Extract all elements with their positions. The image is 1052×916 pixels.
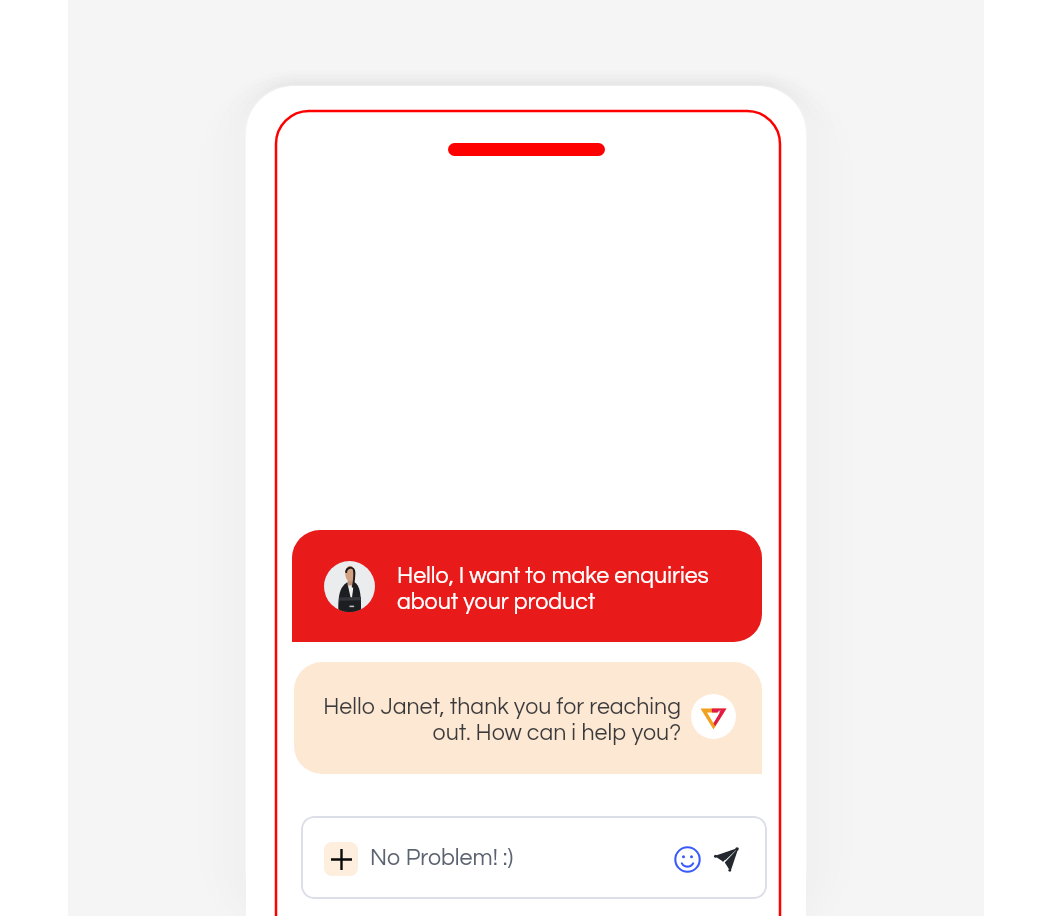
- button[interactable]: Emoji: [670, 842, 704, 876]
- button[interactable]: Hello Janet, thank you for reaching out.…: [294, 662, 762, 774]
- staticText: No Problem! :): [370, 846, 514, 870]
- button[interactable]: Send message: [710, 843, 742, 875]
- button[interactable]: Add attachment: [324, 842, 358, 876]
- staticText: Hello Janet, thank you for reaching out.…: [323, 695, 681, 745]
- staticText: Hello, I want to make enquiries about yo…: [397, 564, 709, 614]
- button[interactable]: Hello, I want to make enquiries about yo…: [292, 530, 762, 642]
- button[interactable]: Add attachment: [301, 816, 767, 899]
